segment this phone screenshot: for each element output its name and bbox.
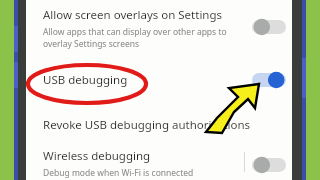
button[interactable]: Wireless debugging toggle, off [252, 156, 286, 174]
staticText: overlay Settings screens [43, 38, 140, 50]
staticText: Wireless debugging [43, 148, 151, 164]
staticText: Revoke USB debugging authorizations [43, 117, 251, 133]
button[interactable]: Allow screen overlays toggle, off [252, 18, 286, 36]
button[interactable]: Wireless debugging [26, 144, 292, 180]
button[interactable]: USB debugging toggle, on [252, 71, 286, 89]
button[interactable]: Revoke USB debugging authorizations [26, 108, 292, 142]
staticText: USB debugging [43, 72, 252, 88]
staticText: Allow screen overlays on Settings [43, 7, 223, 23]
staticText: Debug mode when Wi-Fi is connected [43, 167, 194, 179]
button[interactable]: USB debugging [26, 58, 292, 102]
staticText: Allow apps that can display over other a… [43, 26, 227, 38]
button[interactable]: Allow screen overlays on Settings [26, 0, 292, 56]
